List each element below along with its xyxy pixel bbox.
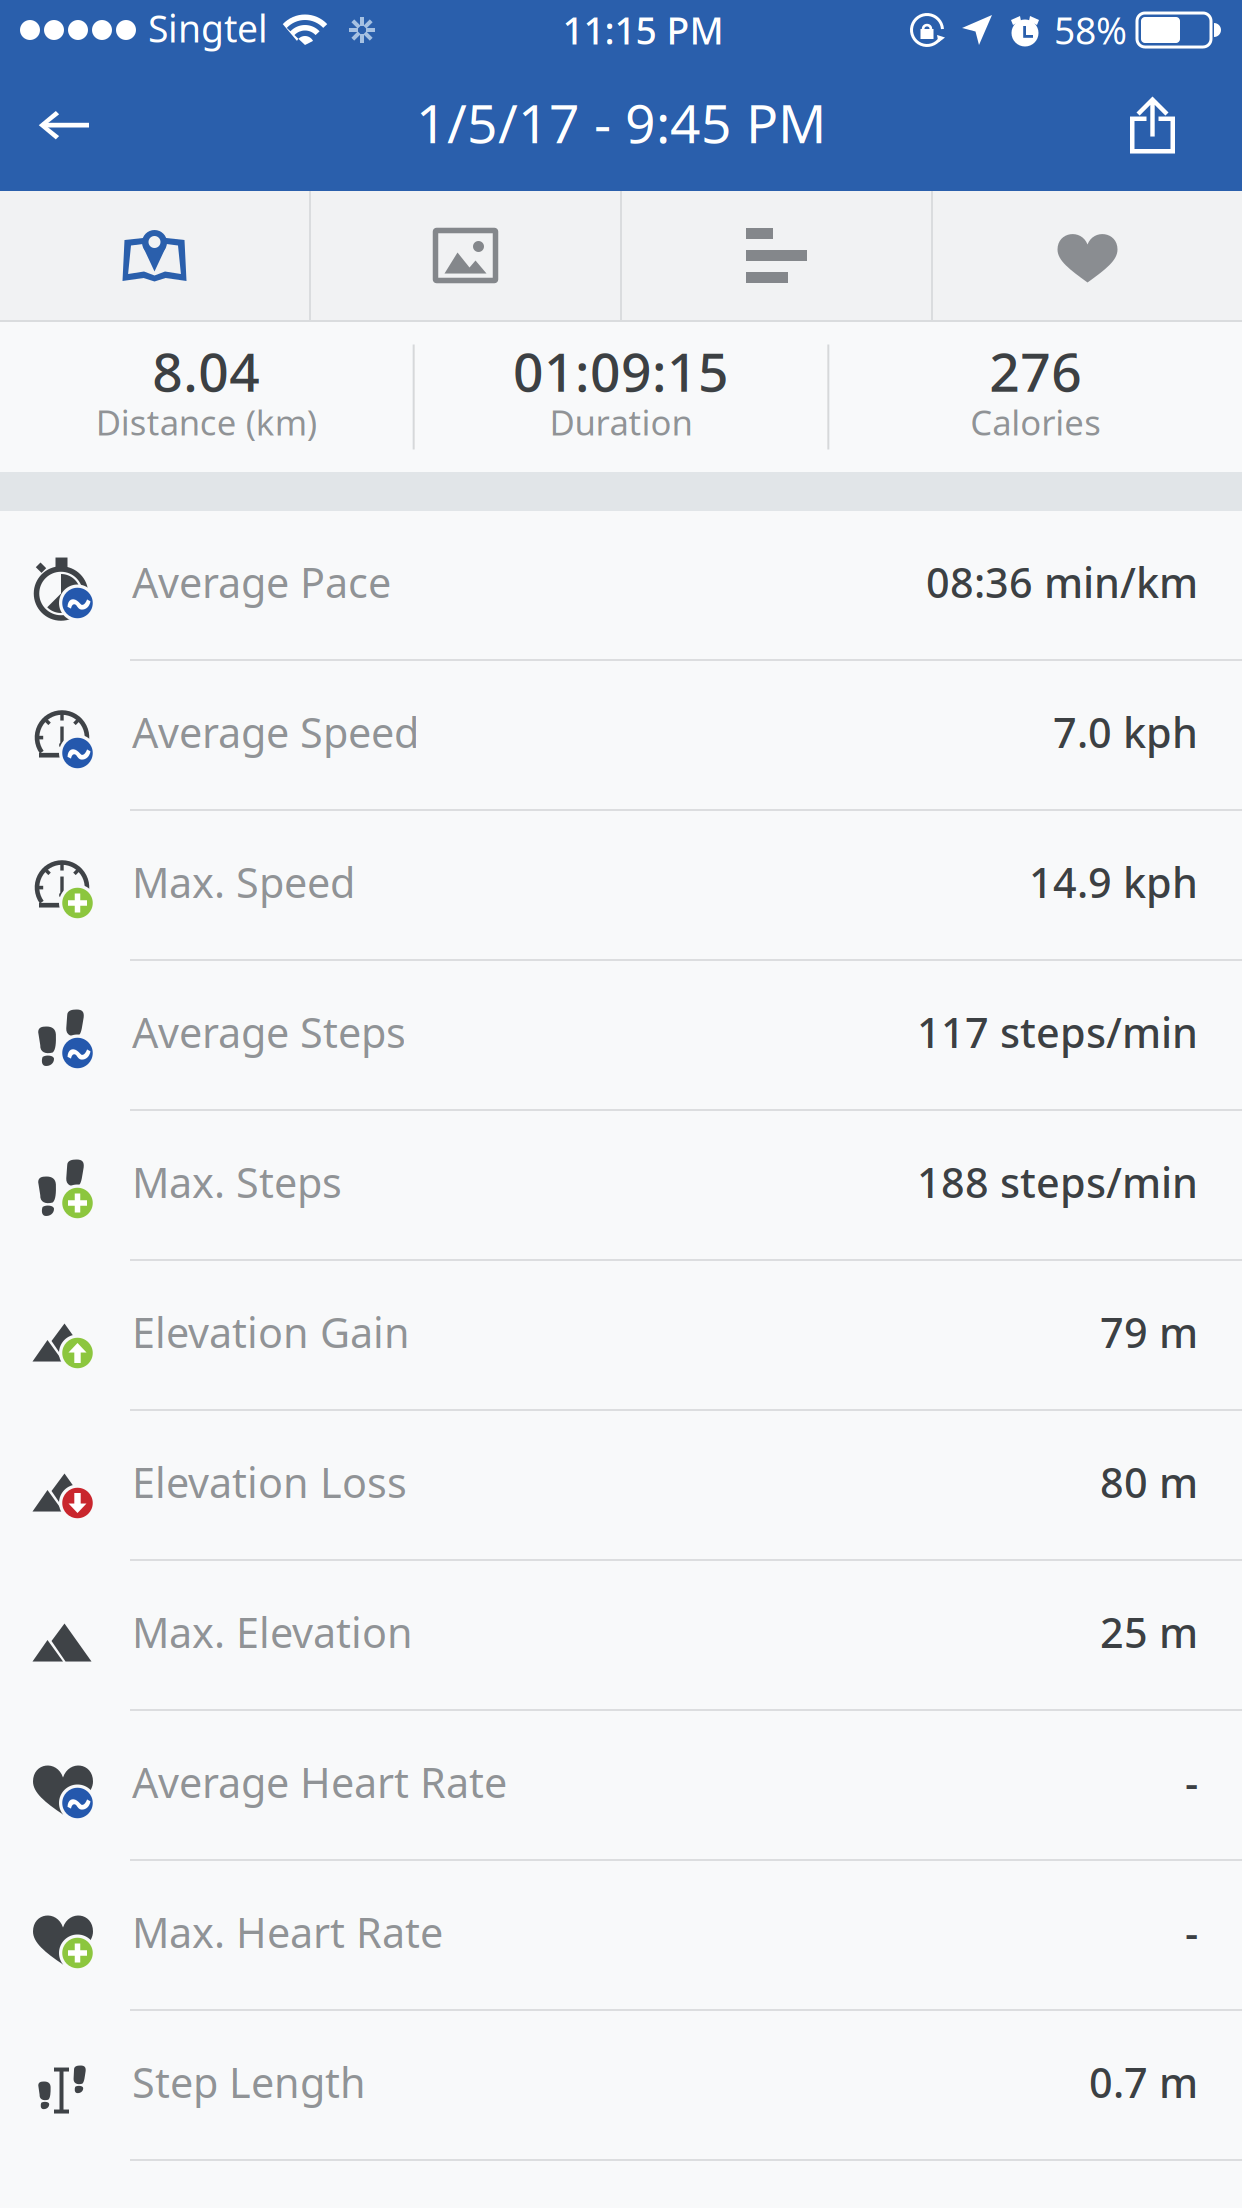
button[interactable]: Back: [0, 60, 119, 190]
staticText: Step Length: [132, 2055, 366, 2109]
staticText: Max. Heart Rate: [132, 1905, 443, 1959]
staticText: 1/5/17 - 9:45 PM: [416, 87, 826, 158]
button[interactable]: Share: [1100, 60, 1242, 190]
staticText: Max. Speed: [132, 855, 355, 909]
button[interactable]: Average Speed: [0, 661, 1242, 811]
staticText: Average Steps: [132, 1005, 406, 1059]
staticText: Max. Elevation: [132, 1605, 413, 1659]
button[interactable]: Max. Steps: [0, 1111, 1242, 1261]
staticText: Elevation Gain: [132, 1305, 410, 1359]
staticText: Average Heart Rate: [132, 1755, 507, 1809]
button[interactable]: Max. Speed: [0, 811, 1242, 961]
staticText: Max. Steps: [132, 1155, 342, 1209]
staticText: 11:15 PM: [562, 5, 723, 55]
staticText: Average Pace: [132, 555, 391, 609]
staticText: 58%: [1054, 5, 1127, 55]
button[interactable]: Elevation Gain: [0, 1261, 1242, 1411]
staticText: 80 m: [1100, 1455, 1198, 1509]
button[interactable]: Max. Heart Rate: [0, 1861, 1242, 2011]
staticText: Singtel: [148, 3, 268, 53]
button[interactable]: Elevation Loss: [0, 1411, 1242, 1561]
staticText: 25 m: [1100, 1605, 1198, 1659]
staticText: -: [1185, 1755, 1198, 1809]
staticText: 79 m: [1100, 1305, 1198, 1359]
staticText: -: [1185, 1905, 1198, 1959]
staticText: 117 steps/min: [917, 1005, 1198, 1059]
button[interactable]: Heart rate: [933, 191, 1242, 320]
staticText: Duration: [549, 399, 692, 445]
staticText: Calories: [970, 399, 1101, 445]
staticText: 0.7 m: [1089, 2055, 1198, 2109]
button[interactable]: Map: [0, 191, 309, 320]
button[interactable]: Average Heart Rate: [0, 1711, 1242, 1861]
button[interactable]: Average Steps: [0, 961, 1242, 1111]
button[interactable]: Average Pace: [0, 511, 1242, 661]
button[interactable]: Step Length: [0, 2011, 1242, 2161]
staticText: 188 steps/min: [917, 1155, 1198, 1209]
button[interactable]: Max. Elevation: [0, 1561, 1242, 1711]
staticText: 01:09:15: [513, 336, 729, 406]
button[interactable]: Photos: [311, 191, 620, 320]
staticText: 14.9 kph: [1029, 855, 1198, 909]
staticText: 276: [989, 336, 1082, 406]
staticText: Average Speed: [132, 705, 419, 759]
button[interactable]: Splits: [622, 191, 931, 320]
staticText: Elevation Loss: [132, 1455, 407, 1509]
staticText: 7.0 kph: [1053, 705, 1198, 759]
staticText: 08:36 min/km: [926, 555, 1198, 609]
staticText: Distance (km): [96, 399, 317, 445]
staticText: 8.04: [152, 336, 260, 406]
